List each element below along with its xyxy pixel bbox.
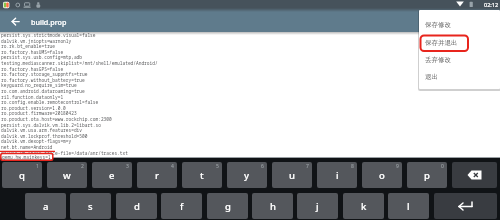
staticText: dalvik.vm.lockprof.threshold=500 [1,133,88,139]
button[interactable] [452,162,497,188]
button[interactable]: 丢弃修改 [419,52,500,68]
staticText: r [155,169,160,182]
button[interactable] [434,193,497,219]
button[interactable]: a [25,193,66,219]
staticText: persist.sys.strictmode.visual=false [1,32,96,38]
staticText: 保存修改 [425,21,451,29]
button[interactable]: r [137,162,177,188]
staticText: y [244,169,250,182]
staticText: ro.factory.without_battery=true [1,77,85,83]
staticText: 7 [306,163,309,170]
staticText: ro.product.version=1.0.0 [1,105,66,111]
staticText: j [316,200,319,213]
staticText: 5 [216,163,219,170]
button[interactable]: o [362,162,402,188]
staticText: q [19,169,25,182]
staticText: p [424,169,430,182]
staticText: dalvik.vm.stack-trace-file=/data/anr/tra… [1,150,128,156]
button[interactable]: u [272,162,312,188]
staticText: ro.product.firmware=20180423 [1,110,77,116]
staticText: g [225,200,231,213]
staticText: s [88,200,93,213]
staticText: u [289,169,295,182]
staticText: 退出 [425,73,438,81]
staticText: testing.mediascanner.skiplist=/mnt/shell… [1,60,158,66]
staticText: persist.sys.dalvik.vm.lib.2=libart.so [1,122,101,128]
staticText: ro.factory.hasUMS=false [1,49,64,55]
staticText: keyguard.no_require_sim=true [1,82,77,88]
button[interactable]: s [70,193,111,219]
staticText: 6 [261,163,264,170]
button[interactable]: 保存并退出 [419,35,500,51]
staticText: dalvik.vm.usa.arm.features=div [1,127,82,133]
button[interactable]: 退出 [419,69,500,85]
button[interactable]: y [227,162,267,188]
staticText: k [361,200,367,213]
staticText: dalvik.vm.dexopt-flags=m=y [1,138,72,144]
button[interactable]: t [182,162,222,188]
staticText: 02:12 [484,1,499,8]
staticText: dalvik.vm.jniopts=warnonly [1,38,72,44]
staticText: ro.factory.hasGPS=false [1,66,64,72]
staticText: net.bt.name=Android [1,144,53,150]
staticText: ro.factory.storage_suppntfs=true [1,71,88,77]
staticText: build.prop [31,17,67,27]
staticText: ro.config.enable.remotecontrol=false [1,99,99,105]
staticText: o [379,169,385,182]
staticText: 4 [171,163,174,170]
staticText: 8 [351,163,354,170]
staticText: w [63,169,71,182]
staticText: d [134,200,140,213]
button[interactable]: 保存修改 [419,17,500,33]
button[interactable]: f [161,193,202,219]
staticText: 3 [126,163,129,170]
staticText: ro.product.ota.host=www.rockchip.com:230… [1,116,112,122]
staticText: h [270,200,276,213]
button[interactable] [8,15,23,28]
button[interactable]: j [297,193,338,219]
staticText: 丢弃修改 [425,56,451,64]
button[interactable]: e [92,162,132,188]
staticText: 1 [36,163,39,170]
staticText: a [43,200,49,213]
staticText: l [407,200,410,213]
staticText: t [200,169,204,182]
button[interactable]: q [2,162,42,188]
button[interactable]: l [388,193,429,219]
staticText: persist.sys.usb.config=mtp,adb [1,54,82,60]
staticText: e [109,169,115,182]
staticText: 0 [441,163,444,170]
button[interactable]: p [407,162,447,188]
staticText: qemu.hw.mainkeys=1 [1,155,50,161]
staticText: ro.com.android.dataroaming=true [1,88,85,94]
staticText: 2 [81,163,84,170]
staticText: qemu.hw.mainkeys=1 [2,154,51,160]
button[interactable]: g [207,193,248,219]
staticText: ril.function.dataonly=1 [1,94,64,100]
button[interactable]: i [317,162,357,188]
button[interactable]: w [47,162,87,188]
staticText: 保存并退出 [425,39,458,47]
button[interactable]: d [116,193,157,219]
staticText: f [180,200,184,213]
button[interactable]: k [343,193,384,219]
staticText: ro.rk.bt_enable=true [1,43,55,49]
staticText: 9 [396,163,399,170]
button[interactable]: h [252,193,293,219]
staticText: i [336,169,339,182]
